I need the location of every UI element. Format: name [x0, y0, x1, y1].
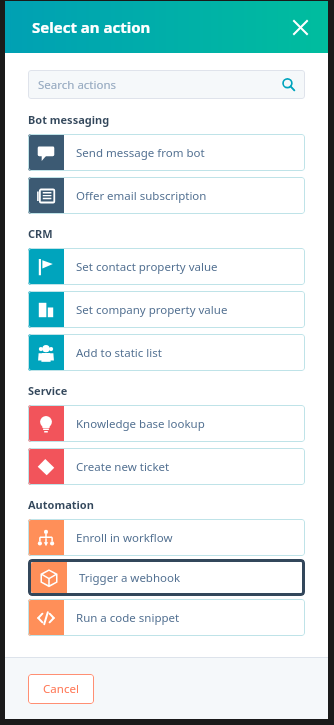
button[interactable]: Set company property value: [28, 291, 305, 328]
staticText: Set contact property value: [76, 259, 218, 275]
staticText: Cancel: [43, 681, 79, 697]
button[interactable]: Send message from bot: [28, 134, 305, 171]
button[interactable]: Knowledge base lookup: [28, 405, 305, 442]
button[interactable]: Trigger a webhook: [31, 562, 302, 593]
button[interactable]: Set contact property value: [28, 248, 305, 285]
staticText: Offer email subscription: [76, 188, 207, 204]
button[interactable]: Search actions: [28, 70, 305, 99]
staticText: Trigger a webhook: [79, 570, 181, 586]
staticText: Enroll in workflow: [76, 530, 173, 546]
button[interactable]: Run a code snippet: [28, 599, 305, 636]
staticText: Set company property value: [76, 302, 228, 318]
button[interactable]: Offer email subscription: [28, 177, 305, 214]
button[interactable]: Add to static list: [28, 334, 305, 371]
staticText: Service: [28, 383, 68, 398]
staticText: Knowledge base lookup: [76, 416, 205, 432]
staticText: Run a code snippet: [76, 610, 180, 626]
staticText: Select an action: [32, 17, 151, 37]
button[interactable]: Enroll in workflow: [28, 519, 305, 556]
button[interactable]: Close: [289, 16, 311, 38]
staticText: Automation: [28, 497, 94, 512]
staticText: Bot messaging: [28, 112, 110, 127]
staticText: CRM: [28, 226, 53, 241]
staticText: Add to static list: [76, 345, 162, 361]
staticText: Search actions: [38, 77, 282, 93]
button[interactable]: Create new ticket: [28, 448, 305, 485]
button[interactable]: Cancel: [28, 674, 94, 704]
staticText: Send message from bot: [76, 145, 205, 161]
staticText: Create new ticket: [76, 459, 170, 475]
